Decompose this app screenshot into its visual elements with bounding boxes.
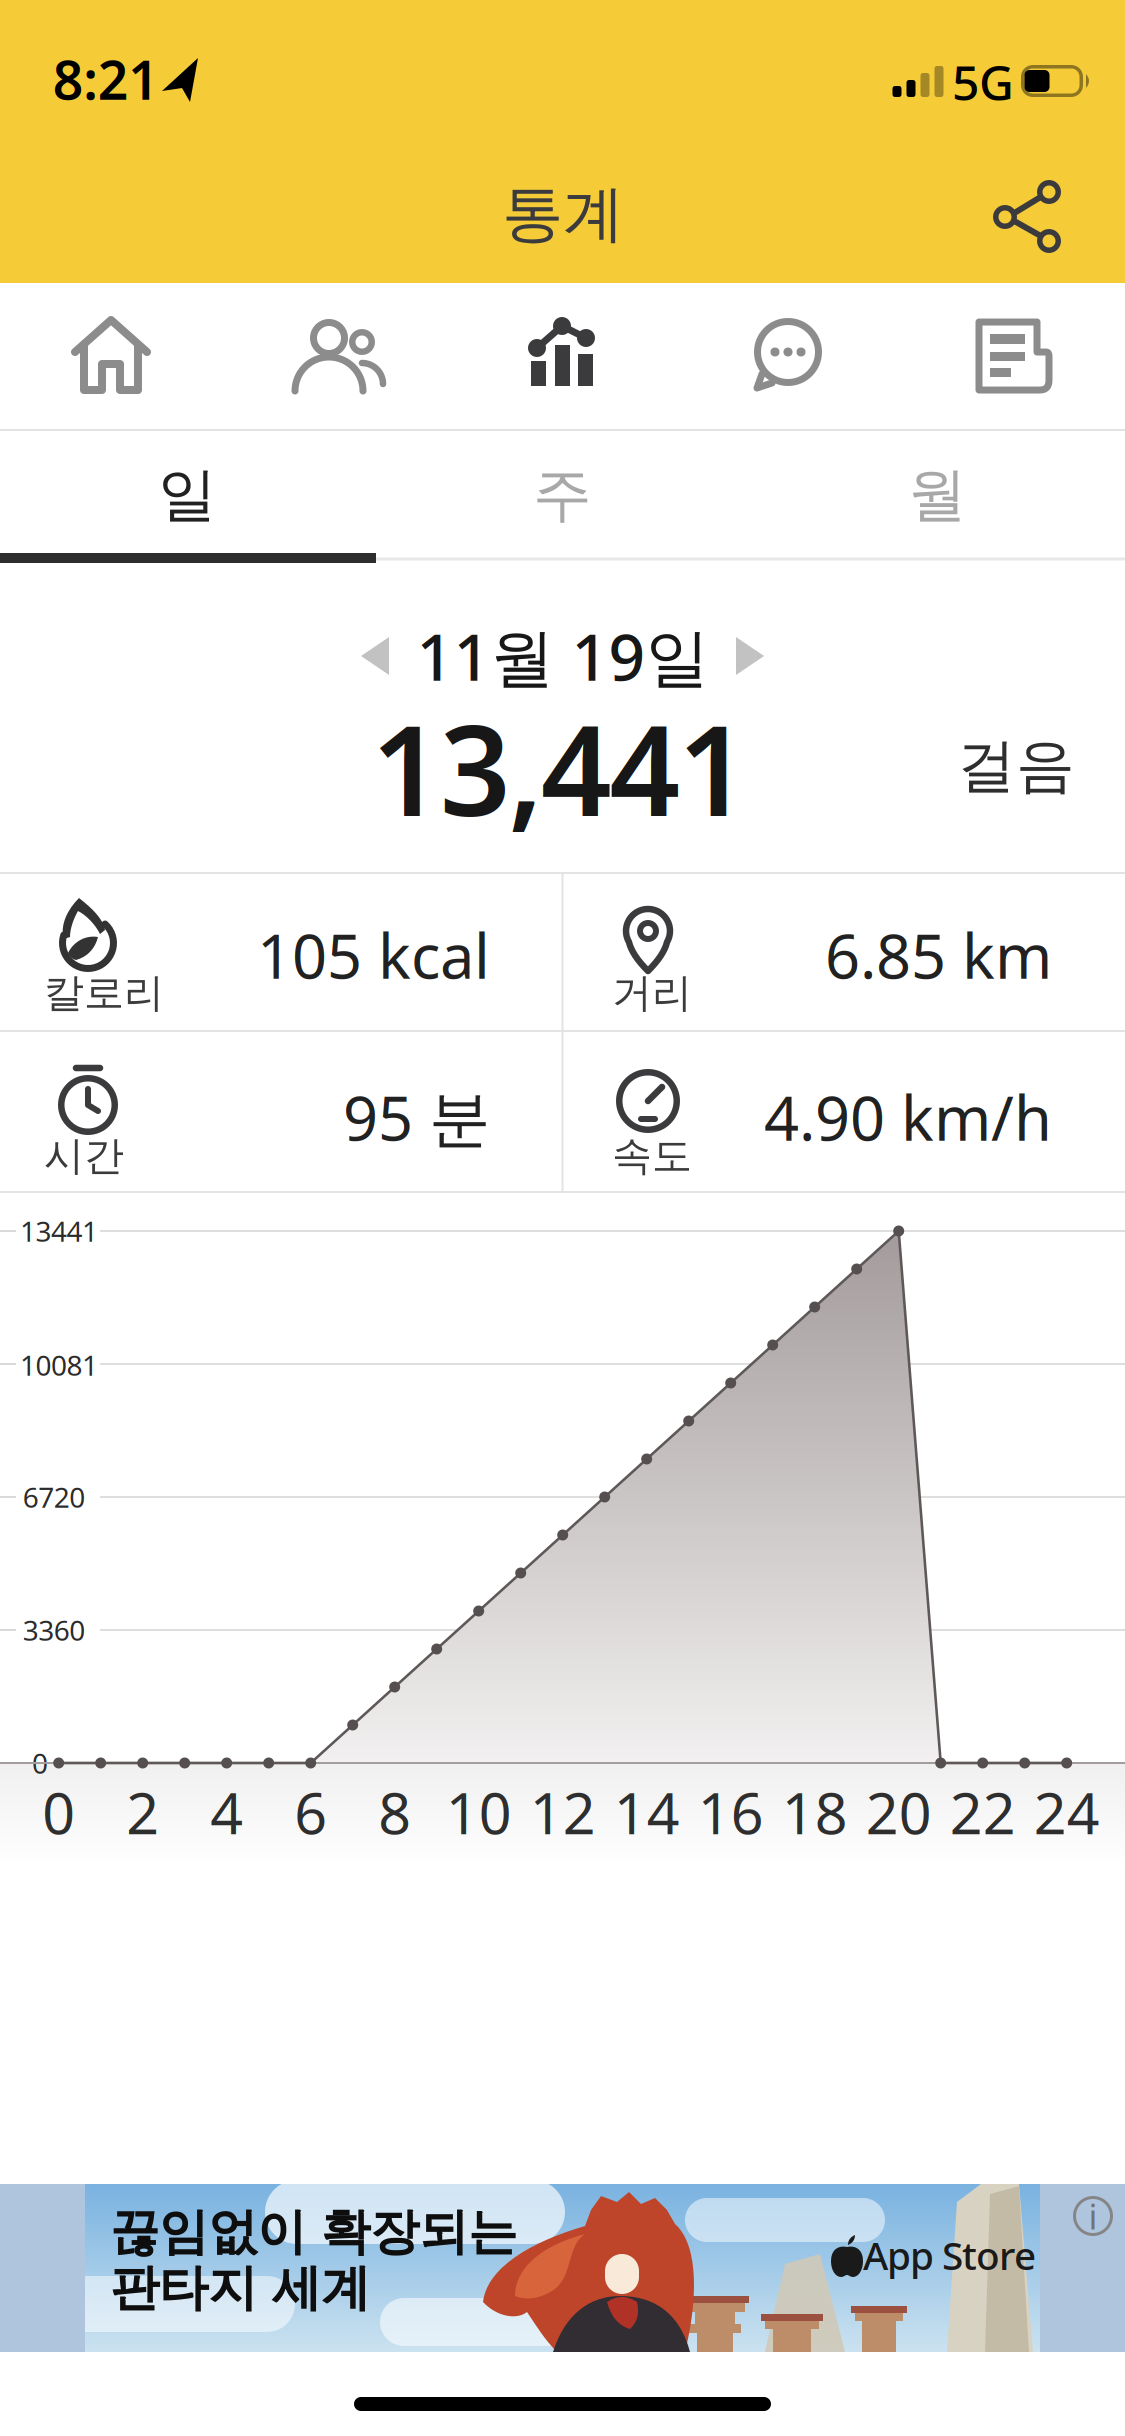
staticText: 24 (1034, 1774, 1100, 1850)
button[interactable]: 광고 (0, 2184, 1125, 2352)
staticText: 10081 (20, 1346, 98, 1384)
staticText: 칼로리 (44, 968, 164, 1017)
staticText: 속도 (612, 1131, 692, 1180)
button[interactable]: Friends (277, 296, 397, 416)
staticText: 2 (126, 1774, 159, 1850)
button[interactable]: Home (51, 296, 171, 416)
staticText: 5G (952, 50, 1014, 114)
staticText: App Store (863, 2229, 1036, 2281)
staticText: 6720 (23, 1478, 85, 1516)
staticText: 끊임없이 확장되는 (110, 2202, 517, 2262)
staticText: 20 (866, 1774, 932, 1850)
button[interactable]: Next day (720, 626, 780, 686)
staticText: 95 분 (343, 1076, 490, 1158)
staticText: 일 (158, 459, 217, 531)
staticText: i (1088, 2193, 1097, 2239)
staticText: 8:21 (53, 44, 159, 114)
button[interactable]: Chat (728, 296, 848, 416)
staticText: 8 (378, 1774, 411, 1850)
staticText: 105 kcal (257, 914, 490, 996)
button[interactable]: Previous day (345, 626, 405, 686)
staticText: 16 (698, 1774, 764, 1850)
staticText: 월 (908, 459, 967, 531)
staticText: 0 (32, 1744, 48, 1782)
staticText: 4.90 km/h (764, 1076, 1052, 1158)
staticText: 4 (210, 1774, 243, 1850)
button[interactable]: 월 (750, 434, 1125, 556)
staticText: 주 (533, 459, 592, 531)
staticText: 6.85 km (825, 914, 1052, 996)
staticText: 18 (782, 1774, 848, 1850)
staticText: 11월 19일 (416, 613, 709, 698)
button[interactable]: Share (988, 175, 1068, 255)
button[interactable]: 주 (375, 434, 750, 556)
staticText: 걸음 (957, 730, 1075, 802)
staticText: 0 (42, 1774, 75, 1850)
staticText: 6 (294, 1774, 327, 1850)
button[interactable]: News (953, 296, 1073, 416)
staticText: 14 (614, 1774, 680, 1850)
staticText: 통계 (502, 176, 624, 252)
staticText: 10 (446, 1774, 512, 1850)
staticText: 판타지 세계 (110, 2258, 370, 2318)
staticText: 22 (950, 1774, 1016, 1850)
staticText: 12 (530, 1774, 596, 1850)
staticText: 13,441 (371, 686, 749, 850)
staticText: 거리 (612, 968, 692, 1017)
button[interactable]: Statistics (502, 296, 622, 416)
staticText: 3360 (23, 1611, 85, 1649)
button[interactable]: 일 (0, 434, 375, 556)
staticText: 13441 (20, 1212, 98, 1250)
staticText: 시간 (44, 1131, 124, 1180)
